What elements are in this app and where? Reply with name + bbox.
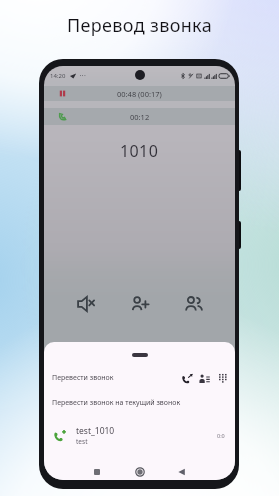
button[interactable]: 00:48 (00:17) [44, 86, 235, 101]
staticText: ⋯ [79, 72, 86, 80]
button[interactable]: Contacts [197, 371, 211, 385]
staticText: Перевести звонок [52, 373, 114, 383]
button[interactable]: Dialpad [216, 371, 230, 385]
staticText: 1010 [120, 140, 159, 162]
button[interactable]: Conference call [185, 295, 203, 313]
button[interactable]: Home [132, 464, 148, 480]
staticText: 14:20 [50, 72, 66, 80]
button[interactable]: Transfer call [180, 371, 194, 385]
button[interactable]: Back [174, 464, 190, 480]
staticText: 00:48 (00:17) [117, 89, 162, 99]
button[interactable]: Recents [89, 464, 105, 480]
button[interactable]: Перевести звонок [44, 367, 235, 388]
staticText: test_1010 [76, 425, 115, 437]
staticText: Перевести звонок на текущий звонок [52, 398, 181, 408]
button[interactable]: 00:12 [44, 108, 235, 125]
button[interactable]: Add call [131, 295, 149, 313]
staticText: 0:0 [217, 432, 225, 439]
staticText: Перевод звонка [0, 13, 279, 38]
button[interactable]: Mute [77, 295, 95, 313]
staticText: 00:12 [130, 112, 150, 122]
staticText: test [76, 437, 88, 446]
button[interactable]: test_1010 [44, 420, 235, 450]
